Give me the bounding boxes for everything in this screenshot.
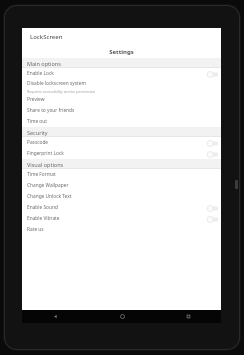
staticText: Enable Sound: [27, 204, 58, 211]
staticText: Enable Lock: [27, 70, 54, 77]
button[interactable]: Passcode toggle: [204, 138, 220, 148]
staticText: Fingerprint Lock: [27, 150, 64, 157]
staticText: Settings: [109, 48, 134, 56]
button[interactable]: Enable Vibrate toggle: [204, 214, 220, 224]
button[interactable]: Time out: [22, 116, 221, 127]
staticText: Change Unlock Text: [27, 193, 72, 200]
button[interactable]: Passcode: [22, 137, 221, 148]
button[interactable]: Recents: [155, 310, 221, 323]
staticText: Disable lockscreen system: [27, 80, 86, 87]
staticText: Share to your friends: [27, 107, 75, 114]
button[interactable]: Home: [89, 310, 155, 323]
button[interactable]: Enable Sound: [22, 202, 221, 213]
button[interactable]: Fingerprint Lock: [22, 148, 221, 159]
staticText: Requires accessibility service permissio…: [27, 89, 96, 94]
button[interactable]: Enable Lock toggle: [204, 69, 220, 79]
staticText: Change Wallpaper: [27, 182, 69, 189]
staticText: Time Format: [27, 171, 56, 178]
button[interactable]: Share to your friends: [22, 105, 221, 116]
button[interactable]: Back: [22, 310, 89, 323]
staticText: Preview: [27, 96, 45, 103]
staticText: Security: [27, 129, 48, 136]
staticText: Main options: [27, 60, 61, 67]
staticText: LockScreen: [30, 33, 63, 41]
button[interactable]: Change Wallpaper: [22, 180, 221, 191]
button[interactable]: Fingerprint Lock toggle: [204, 149, 220, 159]
staticText: Visual options: [27, 161, 64, 168]
button[interactable]: Enable Vibrate: [22, 213, 221, 224]
button[interactable]: LockScreen: [22, 28, 221, 45]
button[interactable]: Time Format: [22, 169, 221, 180]
button[interactable]: Enable Sound toggle: [204, 203, 220, 213]
button[interactable]: Change Unlock Text: [22, 191, 221, 202]
button[interactable]: Enable Lock: [22, 68, 221, 79]
staticText: Time out: [27, 118, 47, 125]
button[interactable]: Rate us: [22, 224, 221, 235]
button[interactable]: Preview: [22, 94, 221, 105]
staticText: Passcode: [27, 139, 49, 146]
button[interactable]: Disable lockscreen system: [22, 79, 221, 94]
staticText: Rate us: [27, 226, 44, 233]
staticText: Enable Vibrate: [27, 215, 60, 222]
